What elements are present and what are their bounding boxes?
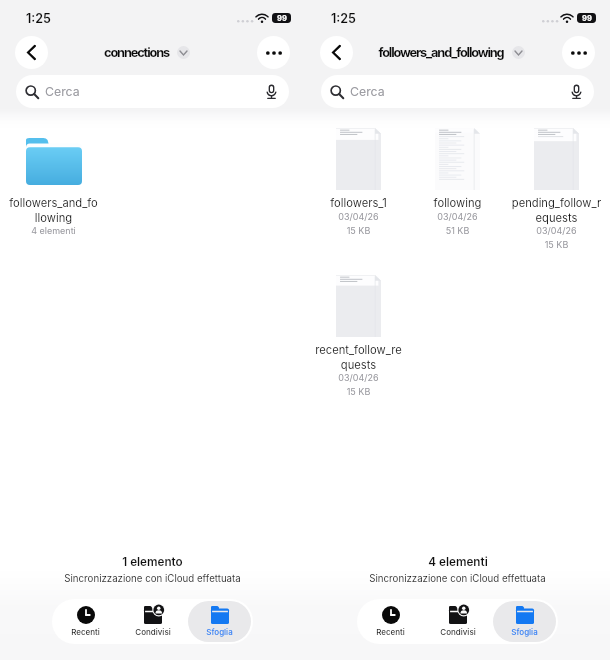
staticText: recent_follow_re quests: [309, 343, 408, 371]
button[interactable]: Recenti: [54, 601, 117, 642]
staticText: Recenti: [376, 627, 405, 637]
button[interactable]: Back: [320, 36, 353, 69]
staticText: 03/04/26: [309, 372, 408, 383]
staticText: 1:25: [331, 11, 356, 26]
staticText: Sincronizzazione con iCloud effettuata: [64, 573, 241, 585]
staticText: Cerca: [350, 84, 385, 99]
staticText: followers_and_fo llowing: [4, 196, 103, 224]
staticText: Sfoglia: [511, 627, 538, 637]
staticText: pending_follow_r equests: [507, 196, 606, 224]
staticText: 4 elementi: [428, 555, 488, 569]
staticText: 1:25: [26, 11, 51, 26]
button[interactable]: More options: [257, 36, 290, 69]
staticText: 99: [277, 14, 287, 23]
staticText: followers_1: [309, 196, 408, 210]
staticText: 99: [582, 14, 592, 23]
button[interactable]: pending_follow_r equests: [507, 127, 606, 250]
staticText: 4 elementi: [4, 225, 103, 236]
button[interactable]: connections: [104, 45, 190, 60]
button[interactable]: Cerca: [321, 75, 594, 108]
button[interactable]: Recenti: [359, 601, 422, 642]
button[interactable]: Cerca: [16, 75, 289, 108]
staticText: 03/04/26: [309, 211, 408, 222]
staticText: Condivisi: [135, 627, 171, 637]
button[interactable]: followers_1: [309, 127, 408, 236]
button[interactable]: followers_and_following: [378, 45, 525, 60]
staticText: Sincronizzazione con iCloud effettuata: [369, 573, 546, 585]
staticText: 03/04/26: [408, 211, 507, 222]
staticText: 15 KB: [507, 239, 606, 250]
staticText: Sfoglia: [206, 627, 233, 637]
staticText: Cerca: [45, 84, 80, 99]
button[interactable]: followers_and_fo llowing: [4, 127, 103, 236]
button[interactable]: More options: [562, 36, 595, 69]
button[interactable]: Sfoglia: [493, 601, 556, 642]
staticText: followers_and_following: [378, 45, 504, 60]
staticText: 15 KB: [309, 386, 408, 397]
button[interactable]: following: [408, 127, 507, 236]
button[interactable]: Back: [15, 36, 48, 69]
staticText: 51 KB: [408, 225, 507, 236]
staticText: following: [408, 196, 507, 210]
staticText: 1 elemento: [122, 555, 183, 569]
staticText: Condivisi: [440, 627, 476, 637]
button[interactable]: Condivisi: [426, 601, 489, 642]
button[interactable]: recent_follow_re quests: [309, 274, 408, 397]
staticText: connections: [104, 45, 169, 60]
staticText: 15 KB: [309, 225, 408, 236]
staticText: Recenti: [71, 627, 100, 637]
button[interactable]: Sfoglia: [188, 601, 251, 642]
staticText: 03/04/26: [507, 225, 606, 236]
button[interactable]: Condivisi: [121, 601, 184, 642]
